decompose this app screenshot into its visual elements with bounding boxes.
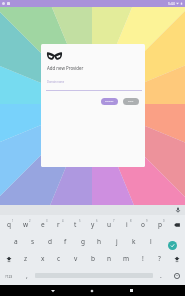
staticText: g (81, 237, 85, 246)
staticText: p (158, 220, 162, 229)
staticText: t (74, 220, 77, 229)
staticText: 3 (46, 219, 48, 223)
staticText: Add new Provider (47, 65, 84, 71)
staticText: n (107, 254, 112, 263)
staticText: 0 (163, 219, 165, 223)
button[interactable]: e (34, 216, 51, 233)
button[interactable]: s (24, 233, 41, 250)
button[interactable]: c (50, 250, 67, 267)
staticText: , (26, 271, 28, 280)
staticText: 7 (113, 219, 115, 223)
staticText: 5:44 (168, 1, 175, 6)
button[interactable]: Caps lock (168, 250, 185, 267)
staticText: ! (142, 254, 144, 263)
staticText: s (31, 237, 35, 246)
button[interactable]: f (57, 233, 74, 250)
staticText: SAVE (128, 100, 134, 103)
button[interactable]: ?123 (0, 268, 18, 284)
button[interactable]: m (118, 250, 135, 267)
staticText: 1 (12, 219, 14, 223)
staticText: d (48, 237, 52, 246)
staticText: 9 (146, 219, 148, 223)
button[interactable]: a (7, 233, 24, 250)
staticText: ? (158, 254, 161, 263)
button[interactable]: y (84, 216, 101, 233)
button[interactable]: j (108, 233, 125, 250)
button[interactable]: Emoji (168, 267, 185, 284)
button[interactable]: . (152, 267, 169, 284)
button[interactable]: Shift (0, 250, 17, 267)
staticText: a (14, 237, 18, 246)
button[interactable]: , (18, 267, 35, 284)
button[interactable]: Recent apps (124, 285, 138, 296)
button[interactable]: ? (151, 250, 168, 267)
button[interactable]: n (101, 250, 118, 267)
button[interactable]: Home (85, 285, 99, 296)
staticText: x (41, 254, 45, 263)
staticText: q (7, 220, 11, 229)
staticText: f (64, 237, 67, 246)
staticText: u (107, 220, 112, 229)
staticText: m (123, 254, 130, 263)
staticText: 5 (79, 219, 81, 223)
button[interactable]: p (151, 216, 168, 233)
button[interactable]: d (41, 233, 58, 250)
staticText: y (91, 220, 95, 229)
button[interactable]: x (34, 250, 51, 267)
staticText: . (160, 271, 162, 280)
button[interactable]: CANCEL (101, 98, 118, 105)
button[interactable]: h (91, 233, 108, 250)
button[interactable]: v (67, 250, 84, 267)
staticText: j (116, 237, 118, 246)
button[interactable]: b (84, 250, 101, 267)
staticText: Domain name (47, 80, 65, 84)
staticText: w (23, 220, 29, 229)
staticText: l (150, 237, 152, 246)
button[interactable]: Back (46, 285, 60, 296)
staticText: k (132, 237, 136, 246)
staticText: z (24, 254, 28, 263)
staticText: v (74, 254, 78, 263)
staticText: ?123 (5, 274, 13, 279)
button[interactable]: l (142, 233, 159, 250)
button[interactable]: Enter (168, 241, 177, 250)
button[interactable]: w (17, 216, 34, 233)
staticText: i (126, 220, 128, 229)
button[interactable]: Backspace (168, 216, 185, 233)
button[interactable]: ! (134, 250, 151, 267)
button[interactable]: i (118, 216, 135, 233)
button[interactable]: z (17, 250, 34, 267)
staticText: r (57, 220, 60, 229)
button[interactable]: u (101, 216, 118, 233)
staticText: e (41, 220, 45, 229)
button[interactable]: r (50, 216, 67, 233)
staticText: 8 (130, 219, 132, 223)
button[interactable]: k (125, 233, 142, 250)
staticText: o (141, 220, 145, 229)
staticText: 4 (62, 219, 64, 223)
staticText: CANCEL (105, 100, 114, 103)
staticText: c (57, 254, 61, 263)
button[interactable]: t (67, 216, 84, 233)
staticText: 6 (96, 219, 98, 223)
button[interactable]: o (134, 216, 151, 233)
staticText: b (91, 254, 95, 263)
button[interactable]: SAVE (123, 98, 139, 105)
staticText: 2 (29, 219, 31, 223)
button[interactable]: q (0, 216, 17, 233)
button[interactable]: g (74, 233, 91, 250)
staticText: h (97, 237, 102, 246)
button[interactable]: Voice input (175, 207, 181, 213)
